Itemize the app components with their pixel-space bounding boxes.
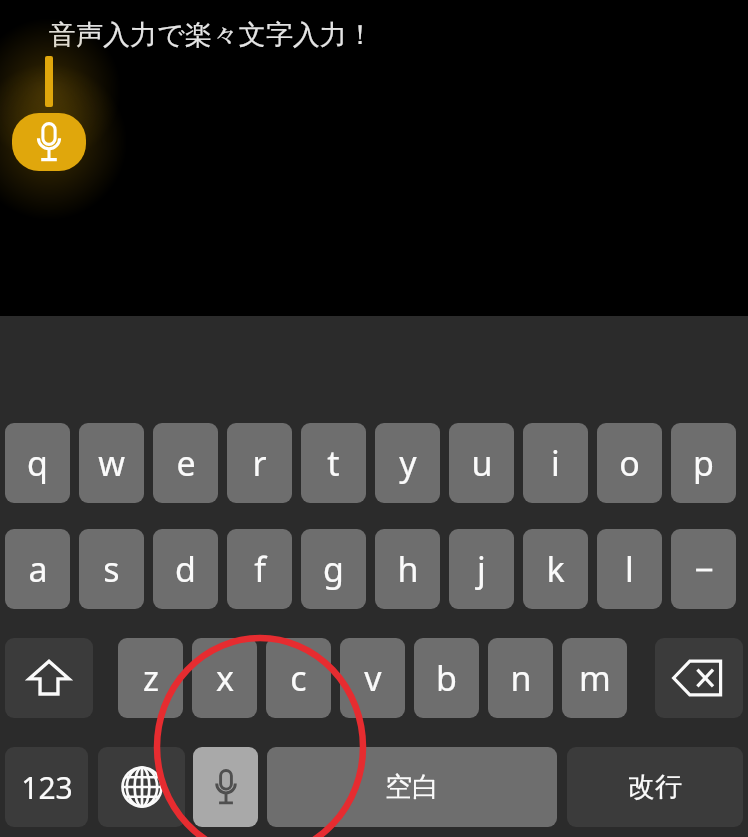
staticText: x bbox=[216, 655, 234, 701]
staticText: t bbox=[327, 440, 340, 486]
staticText: g bbox=[323, 546, 344, 592]
staticText: r bbox=[252, 440, 267, 486]
staticText: a bbox=[28, 546, 48, 592]
button[interactable]: a bbox=[5, 529, 70, 609]
staticText: m bbox=[579, 655, 611, 701]
button[interactable]: k bbox=[523, 529, 588, 609]
button[interactable]: 123 bbox=[5, 747, 88, 827]
button[interactable]: Shift bbox=[5, 638, 93, 718]
button[interactable]: g bbox=[301, 529, 366, 609]
staticText: f bbox=[254, 546, 266, 592]
button[interactable]: h bbox=[375, 529, 440, 609]
staticText: n bbox=[510, 655, 532, 701]
button[interactable]: q bbox=[5, 423, 70, 503]
staticText: 123 bbox=[21, 767, 73, 808]
staticText: j bbox=[477, 546, 486, 592]
staticText: p bbox=[693, 440, 714, 486]
button[interactable]: Voice input bbox=[193, 747, 258, 827]
button[interactable]: i bbox=[523, 423, 588, 503]
button[interactable]: o bbox=[597, 423, 662, 503]
staticText: h bbox=[397, 546, 419, 592]
staticText: e bbox=[176, 440, 196, 486]
button[interactable]: y bbox=[375, 423, 440, 503]
button[interactable]: Start voice input bbox=[12, 113, 86, 171]
staticText: v bbox=[364, 655, 382, 701]
button[interactable]: e bbox=[153, 423, 218, 503]
staticText: 改行 bbox=[628, 770, 682, 804]
staticText: b bbox=[436, 655, 457, 701]
button[interactable]: x bbox=[192, 638, 257, 718]
button[interactable]: t bbox=[301, 423, 366, 503]
button[interactable]: − bbox=[671, 529, 736, 609]
button[interactable]: l bbox=[597, 529, 662, 609]
staticText: z bbox=[143, 655, 159, 701]
staticText: i bbox=[551, 440, 560, 486]
button[interactable]: Switch keyboard language bbox=[98, 747, 185, 827]
button[interactable]: j bbox=[449, 529, 514, 609]
staticText: 空白 bbox=[385, 770, 439, 804]
staticText: k bbox=[546, 546, 565, 592]
button[interactable]: u bbox=[449, 423, 514, 503]
button[interactable]: 空白 bbox=[267, 747, 557, 827]
button[interactable]: n bbox=[488, 638, 553, 718]
button[interactable]: b bbox=[414, 638, 479, 718]
button[interactable]: p bbox=[671, 423, 736, 503]
staticText: w bbox=[98, 440, 125, 486]
staticText: − bbox=[694, 546, 714, 592]
button[interactable]: r bbox=[227, 423, 292, 503]
staticText: l bbox=[625, 546, 634, 592]
button[interactable]: c bbox=[266, 638, 331, 718]
button[interactable]: d bbox=[153, 529, 218, 609]
staticText: u bbox=[471, 440, 493, 486]
button[interactable]: w bbox=[79, 423, 144, 503]
staticText: c bbox=[290, 655, 307, 701]
staticText: d bbox=[175, 546, 196, 592]
staticText: s bbox=[103, 546, 120, 592]
button[interactable]: z bbox=[118, 638, 183, 718]
button[interactable]: m bbox=[562, 638, 627, 718]
button[interactable]: v bbox=[340, 638, 405, 718]
button[interactable]: Backspace bbox=[655, 638, 743, 718]
staticText: 音声入力で楽々文字入力！ bbox=[49, 18, 374, 52]
staticText: o bbox=[619, 440, 640, 486]
staticText: y bbox=[399, 440, 417, 486]
button[interactable]: 改行 bbox=[567, 747, 743, 827]
button[interactable]: s bbox=[79, 529, 144, 609]
staticText: q bbox=[27, 440, 48, 486]
button[interactable]: f bbox=[227, 529, 292, 609]
